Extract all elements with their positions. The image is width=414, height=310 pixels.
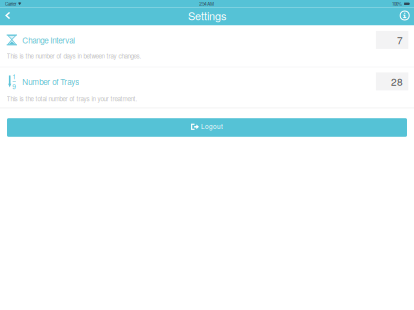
- staticText: 100%: [392, 1, 402, 7]
- button[interactable]: Change Interval: [0, 25, 414, 67]
- staticText: 1: [12, 72, 16, 81]
- staticText: Carrier: [5, 1, 16, 7]
- staticText: Settings: [188, 8, 226, 23]
- staticText: 2:54 AM: [199, 1, 214, 7]
- staticText: This is the total number of trays in you…: [7, 94, 138, 103]
- staticText: Change Interval: [22, 34, 75, 46]
- button[interactable]: Back: [0, 8, 30, 23]
- staticText: Number of Trays: [22, 76, 79, 87]
- button[interactable]: 1: [0, 67, 414, 108]
- staticText: 9: [12, 82, 16, 91]
- staticText: 7: [397, 33, 403, 47]
- button[interactable]: Information: [384, 8, 414, 23]
- staticText: Logout: [201, 122, 223, 131]
- staticText: 28: [391, 74, 403, 89]
- button[interactable]: Logout: [7, 118, 407, 137]
- staticText: This is the number of days in between tr…: [7, 51, 142, 60]
